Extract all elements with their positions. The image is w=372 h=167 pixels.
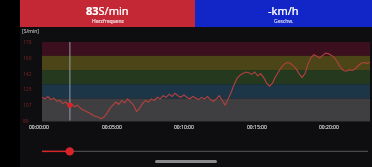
button[interactable]: -km/h bbox=[195, 0, 372, 27]
staticText: 107 bbox=[23, 102, 32, 109]
staticText: Herzfrequenz bbox=[92, 18, 124, 25]
staticText: 125 bbox=[23, 86, 32, 93]
staticText: 00:10:00 bbox=[174, 124, 194, 131]
staticText: 00:05:00 bbox=[102, 124, 122, 131]
staticText: 142 bbox=[23, 71, 32, 78]
staticText: 178 bbox=[23, 39, 32, 46]
button[interactable]: 83S/min bbox=[20, 0, 195, 27]
staticText: 160 bbox=[23, 55, 32, 62]
staticText: 00:20:00 bbox=[319, 124, 339, 131]
staticText: -km/h bbox=[268, 3, 299, 18]
staticText: 89 bbox=[23, 118, 29, 125]
staticText: 00:00:00 bbox=[29, 124, 49, 131]
staticText: 83S/min bbox=[86, 3, 129, 18]
staticText: [S/min] bbox=[22, 28, 39, 35]
button[interactable]: Zeit-Schieberegler bbox=[20, 141, 372, 167]
staticText: 00:15:00 bbox=[247, 124, 267, 131]
staticText: Geschw. bbox=[274, 18, 294, 25]
